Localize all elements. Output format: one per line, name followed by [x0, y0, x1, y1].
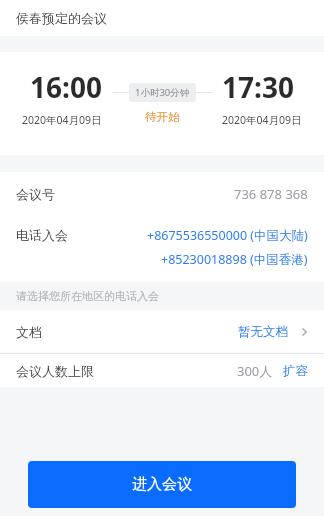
staticText: 会议人数上限 — [16, 363, 94, 379]
staticText: 侯春预定的会议 — [16, 10, 107, 26]
staticText: 进入会议 — [132, 475, 192, 494]
staticText: 300人 — [237, 362, 273, 380]
staticText: 暂无文档 — [238, 324, 288, 340]
staticText: 1小时30分钟 — [135, 86, 190, 99]
button[interactable]: 文档 — [0, 310, 324, 353]
button[interactable]: 扩容 — [283, 363, 308, 379]
button[interactable]: 会议号 — [0, 172, 324, 215]
staticText: 736 878 368 — [234, 185, 308, 203]
staticText: 会议号 — [16, 186, 55, 202]
staticText: +85230018898 (中国香港) — [161, 251, 308, 268]
staticText: 扩容 — [283, 363, 308, 379]
button[interactable]: 进入会议 — [28, 461, 296, 508]
staticText: 请选择您所在地区的电话入会 — [16, 289, 159, 303]
staticText: 16:00 — [30, 68, 102, 106]
staticText: 电话入会 — [16, 227, 68, 243]
staticText: 2020年04月09日 — [22, 113, 102, 127]
staticText: 文档 — [16, 324, 42, 340]
staticText: 待开始 — [145, 110, 180, 124]
staticText: 17:30 — [222, 68, 294, 106]
staticText: +8675536550000 (中国大陆) — [147, 227, 308, 244]
staticText: 2020年04月09日 — [222, 113, 302, 127]
other: 打开文档 — [296, 324, 312, 340]
